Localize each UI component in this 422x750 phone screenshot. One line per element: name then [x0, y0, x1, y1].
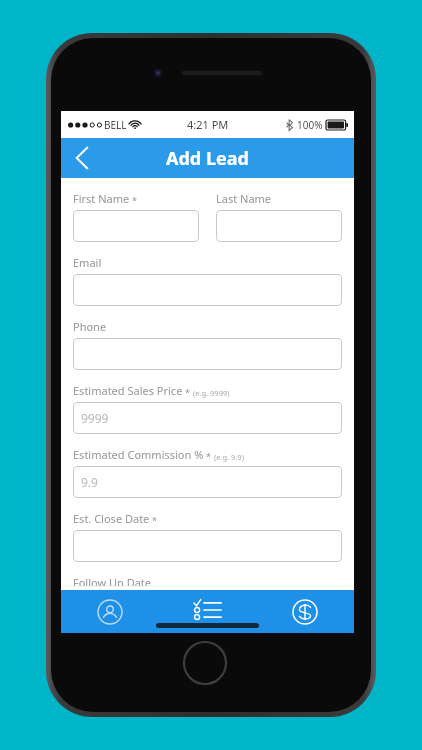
button[interactable] — [73, 210, 199, 242]
button[interactable]: 9.9 — [73, 466, 342, 498]
button[interactable] — [73, 530, 342, 562]
staticText: 9999 — [81, 410, 109, 426]
staticText: Add Lead — [166, 146, 249, 171]
staticText: Phone — [73, 319, 107, 334]
staticText: First Name — [73, 191, 130, 206]
staticText: Estimated Sales Price — [73, 383, 183, 398]
staticText: Estimated Commission % — [73, 447, 204, 462]
staticText: Est. Close Date — [73, 511, 150, 526]
staticText: * — [185, 386, 190, 398]
staticText: (e.g. 9.9) — [214, 452, 244, 462]
button[interactable]: Contacts — [61, 590, 158, 633]
staticText: 100% — [297, 118, 323, 132]
staticText: * — [152, 514, 157, 526]
button[interactable]: Commissions — [256, 590, 354, 633]
staticText: 9.9 — [81, 474, 98, 490]
button[interactable] — [73, 274, 342, 306]
button[interactable] — [73, 338, 342, 370]
button[interactable] — [216, 210, 342, 242]
staticText: * — [132, 194, 137, 206]
button[interactable]: 9999 — [73, 402, 342, 434]
staticText: * — [206, 450, 211, 462]
button[interactable]: Back — [61, 138, 103, 178]
button[interactable]: Leads — [158, 590, 256, 633]
staticText: (e.g. 9999) — [193, 388, 230, 398]
staticText: BELL — [104, 118, 127, 132]
staticText: 4:21 PM — [187, 117, 229, 132]
staticText: Follow Up Date — [73, 575, 152, 586]
staticText: Last Name — [216, 191, 272, 206]
staticText: Email — [73, 255, 102, 270]
